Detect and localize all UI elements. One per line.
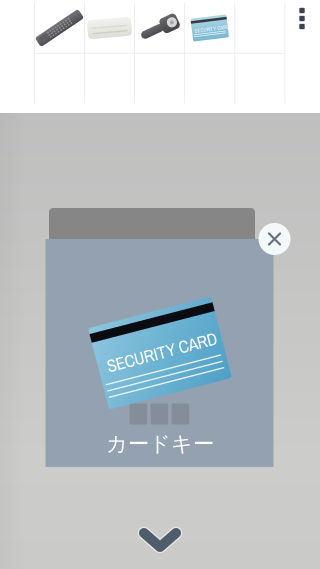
- button[interactable]: Continue: [132, 520, 188, 560]
- staticText: カードキー: [106, 431, 214, 457]
- button[interactable]: Close: [258, 223, 290, 255]
- button[interactable]: [34, 3, 84, 53]
- button[interactable]: [135, 3, 185, 53]
- button[interactable]: Menu: [289, 1, 315, 35]
- staticText: SECURITY CARD: [194, 25, 229, 33]
- staticText: SECURITY CARD: [105, 341, 218, 364]
- button[interactable]: SECURITY CARD: [185, 3, 235, 53]
- button[interactable]: [84, 3, 135, 53]
